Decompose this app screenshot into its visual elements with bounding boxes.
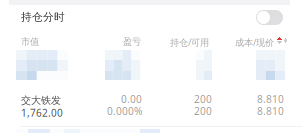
button[interactable]: 持仓分时 bbox=[21, 11, 67, 23]
staticText: 盈亏 bbox=[123, 36, 141, 48]
staticText: 200 bbox=[194, 104, 212, 118]
button[interactable]: 持仓分时开关 bbox=[256, 10, 283, 25]
button[interactable]: 交大铁发 bbox=[21, 94, 284, 122]
staticText: 8.810 bbox=[257, 92, 284, 106]
staticText: 市值 bbox=[21, 36, 39, 48]
staticText: 1,762.00 bbox=[21, 106, 63, 120]
staticText: 持仓分时 bbox=[21, 10, 65, 24]
staticText: 200 bbox=[194, 92, 212, 106]
staticText: 0.00 bbox=[121, 92, 142, 106]
staticText: 0.000% bbox=[107, 104, 142, 118]
staticText: 交大铁发 bbox=[21, 94, 61, 107]
staticText: 持仓/可用 bbox=[170, 36, 209, 48]
staticText: 8.810 bbox=[257, 104, 284, 118]
button[interactable]: 按成本现价排序 bbox=[277, 37, 282, 44]
staticText: 成本/现价 bbox=[235, 36, 274, 48]
